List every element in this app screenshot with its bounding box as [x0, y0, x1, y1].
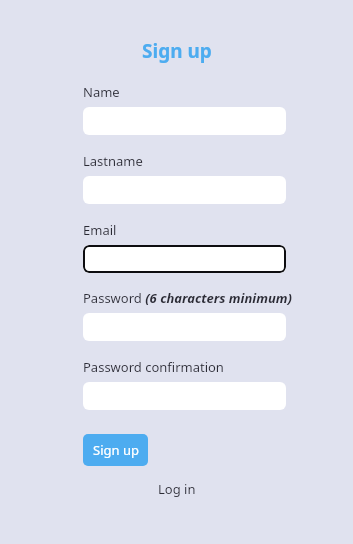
staticText: Password confirmation — [83, 358, 224, 376]
button[interactable] — [83, 245, 286, 273]
staticText: Sign up — [142, 38, 212, 64]
staticText: Log in — [158, 480, 196, 498]
staticText: Name — [83, 83, 120, 101]
staticText: Lastname — [83, 152, 143, 170]
button[interactable]: Log in — [154, 478, 200, 500]
staticText: Email — [83, 221, 117, 239]
button[interactable]: Sign up — [83, 434, 148, 466]
staticText: Sign up — [93, 441, 139, 459]
staticText: Password (6 characters minimum) — [83, 289, 293, 307]
